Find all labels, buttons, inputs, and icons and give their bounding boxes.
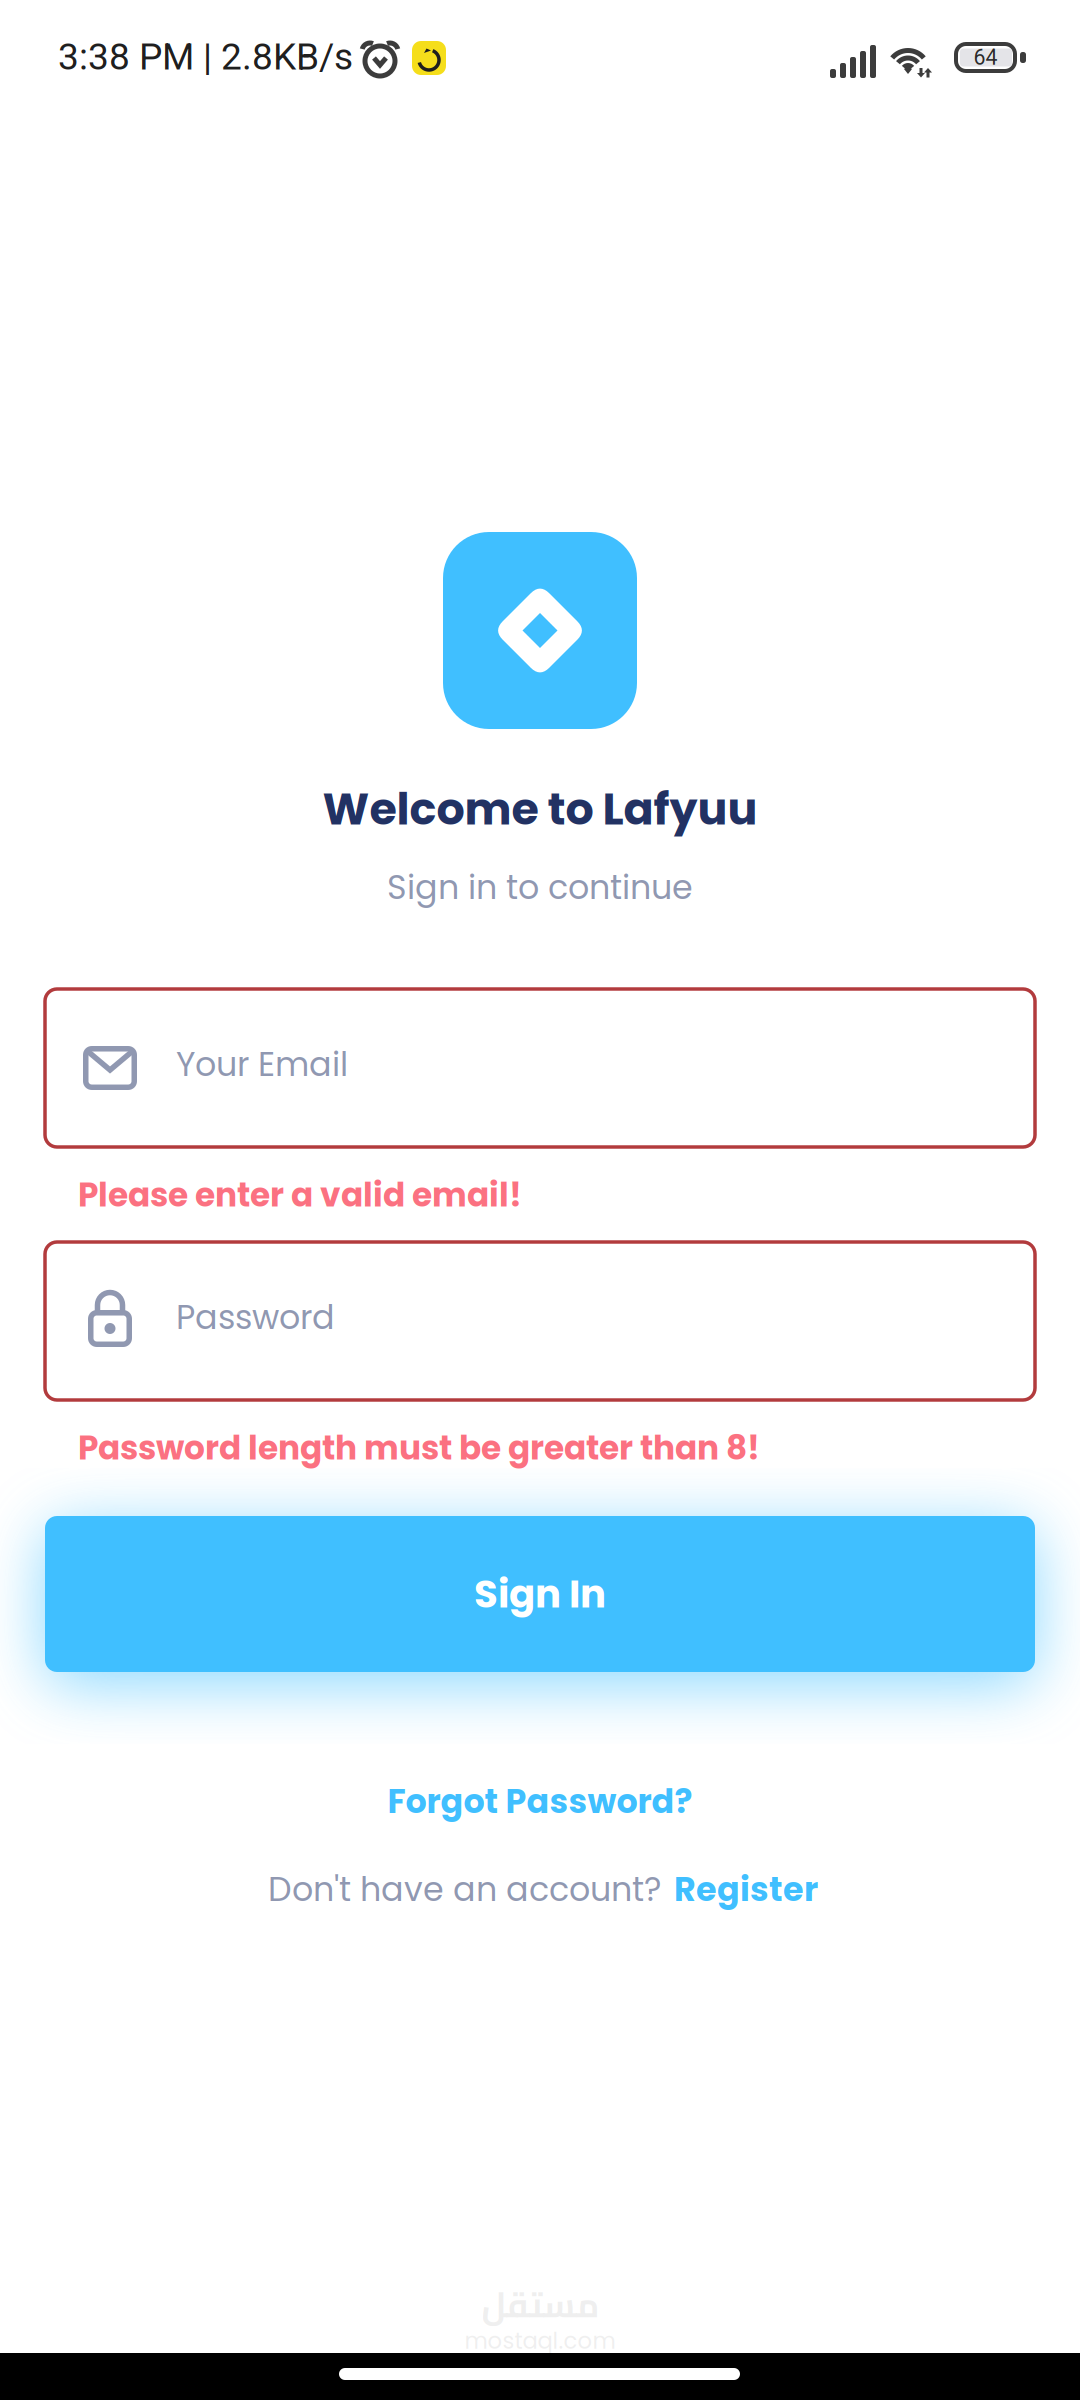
button[interactable]: Sign In [45, 1516, 1035, 1672]
staticText: Sign in to continue [387, 864, 693, 911]
staticText: Your Email [176, 1041, 348, 1088]
staticText: Don't have an account? [268, 1866, 670, 1913]
button[interactable]: Password [45, 1242, 1035, 1400]
staticText: Password length must be greater than 8! [78, 1425, 760, 1471]
staticText: Sign In [474, 1567, 606, 1621]
staticText: 3:38 PM | 2.8KB/s [58, 35, 353, 78]
button[interactable]: Register [670, 1860, 822, 1919]
staticText: Forgot Password? [387, 1778, 692, 1825]
staticText: 64 [973, 45, 997, 70]
staticText: Register [674, 1866, 818, 1913]
staticText: Please enter a valid email! [78, 1172, 522, 1218]
staticText: Welcome to Lafyuu [322, 778, 757, 840]
staticText: Password [176, 1294, 335, 1341]
staticText: mostaql.com [464, 2325, 615, 2357]
button[interactable]: Your Email [45, 989, 1035, 1147]
staticText: مستقل [481, 2272, 599, 2337]
button[interactable]: Forgot Password? [373, 1772, 706, 1831]
